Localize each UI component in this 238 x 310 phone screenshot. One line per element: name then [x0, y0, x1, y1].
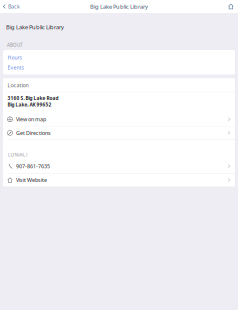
button[interactable]: Home — [225, 1, 238, 12]
staticText: ABOUT — [7, 42, 23, 48]
staticText: Back — [8, 3, 20, 10]
button[interactable]: View on map — [3, 113, 235, 126]
button[interactable]: Get Directions — [3, 126, 235, 139]
staticText: Events — [7, 64, 23, 71]
button[interactable]: Back — [0, 0, 22, 13]
staticText: 3160 S. Big Lake Road — [7, 95, 58, 101]
staticText: Big Lake, AK 99652 — [7, 101, 51, 108]
staticText: Big Lake Public Library — [6, 23, 64, 31]
staticText: 907-861-7635 — [16, 163, 50, 170]
staticText: Big Lake Public Library — [90, 3, 148, 10]
staticText: View on map — [16, 116, 46, 123]
button[interactable]: Visit Website — [3, 174, 235, 186]
button[interactable]: Events — [3, 62, 235, 72]
button[interactable]: 907-861-7635 — [3, 159, 235, 173]
button[interactable]: Hours — [3, 52, 235, 62]
staticText: Get Directions — [16, 129, 51, 137]
staticText: Visit Website — [16, 176, 47, 184]
staticText: Hours — [7, 54, 21, 61]
staticText: Location — [7, 82, 28, 89]
staticText: CONTACT — [7, 152, 28, 158]
